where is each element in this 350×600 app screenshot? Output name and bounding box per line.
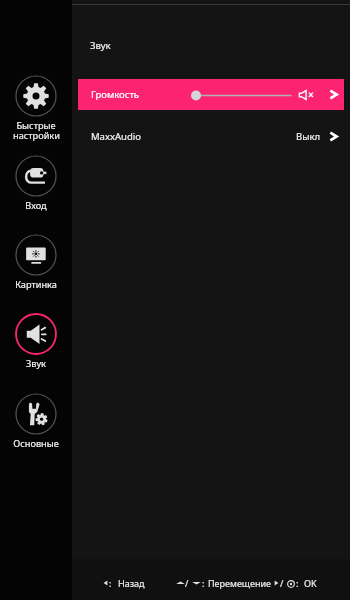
staticText: Перемещение xyxy=(208,577,271,589)
button[interactable]: MaxxAudio xyxy=(78,121,344,152)
staticText: MaxxAudio xyxy=(91,130,141,143)
staticText: настройки xyxy=(13,129,60,142)
staticText: Вход xyxy=(25,199,47,212)
button[interactable]: Громкость xyxy=(78,79,344,110)
staticText: : xyxy=(109,577,112,589)
staticText: : xyxy=(296,577,299,589)
staticText: Выкл xyxy=(296,130,321,143)
button[interactable]: Quick settings xyxy=(0,75,72,137)
staticText: Быстрые xyxy=(16,119,56,132)
staticText: Громкость xyxy=(91,88,140,101)
staticText: Звук xyxy=(90,39,111,52)
staticText: Звук xyxy=(26,357,46,370)
button[interactable]: General xyxy=(0,393,72,455)
button[interactable]: Sound xyxy=(0,313,72,375)
button[interactable]: Mute xyxy=(295,79,315,110)
staticText: Назад xyxy=(118,577,145,589)
staticText: / xyxy=(280,577,284,589)
staticText: / xyxy=(185,577,189,589)
staticText: Основные xyxy=(13,437,59,450)
staticText: : xyxy=(202,577,205,589)
button[interactable]: Picture xyxy=(0,234,72,296)
button[interactable]: Input xyxy=(0,155,72,217)
staticText: OK xyxy=(304,577,317,589)
staticText: Картинка xyxy=(15,278,57,291)
